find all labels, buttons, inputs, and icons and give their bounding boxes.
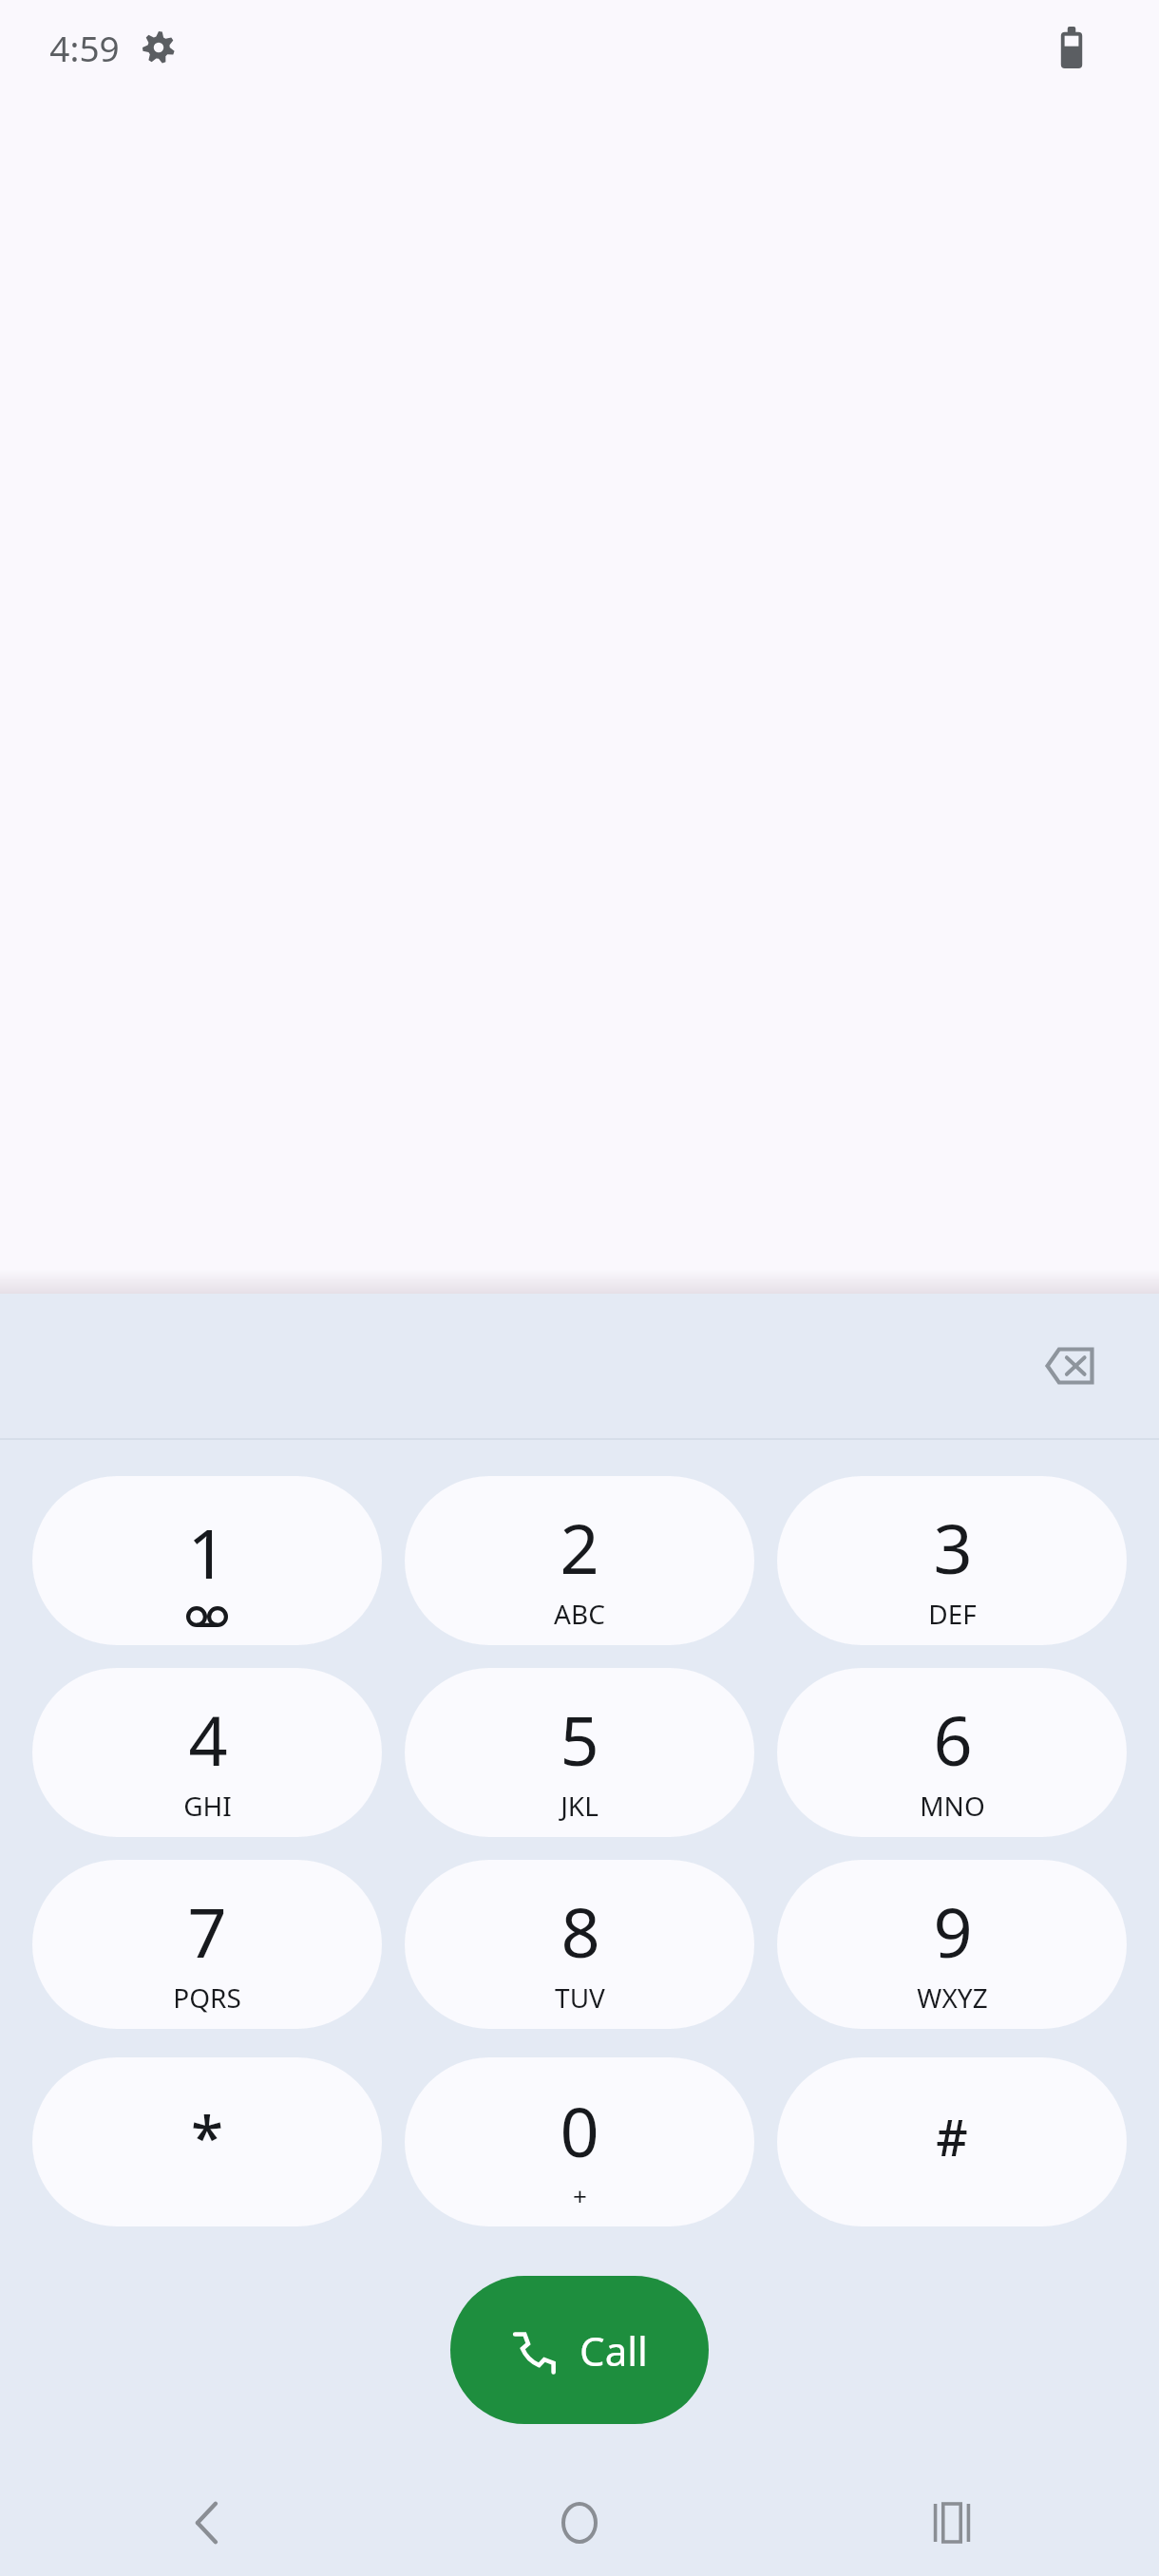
staticText: 3: [933, 1501, 973, 1594]
staticText: 4: [188, 1693, 228, 1786]
staticText: 0: [560, 2084, 599, 2177]
button[interactable]: Home: [532, 2475, 627, 2570]
staticText: MNO: [920, 1788, 985, 1824]
staticText: DEF: [928, 1596, 977, 1632]
staticText: JKL: [560, 1788, 598, 1824]
staticText: *: [191, 2096, 223, 2176]
staticText: Call: [579, 2323, 648, 2377]
staticText: 9: [933, 1885, 973, 1978]
button[interactable]: 1: [32, 1476, 382, 1645]
staticText: 2: [560, 1501, 599, 1594]
button[interactable]: Call: [450, 2276, 709, 2424]
button[interactable]: 3: [777, 1476, 1127, 1645]
button[interactable]: 0: [405, 2057, 754, 2226]
staticText: 5: [560, 1693, 599, 1786]
staticText: 8: [560, 1885, 600, 1978]
staticText: #: [936, 2103, 968, 2170]
staticText: 4:59: [49, 24, 120, 71]
button[interactable]: 6: [777, 1668, 1127, 1837]
button[interactable]: Back: [160, 2475, 255, 2570]
staticText: WXYZ: [917, 1979, 988, 2016]
staticText: TUV: [555, 1979, 605, 2016]
staticText: ABC: [554, 1596, 605, 1632]
staticText: 6: [933, 1693, 973, 1786]
staticText: PQRS: [173, 1979, 241, 2016]
staticText: GHI: [183, 1788, 232, 1824]
button[interactable]: 2: [405, 1476, 754, 1645]
button[interactable]: 5: [405, 1668, 754, 1837]
button[interactable]: #: [777, 2057, 1127, 2226]
staticText: 1: [187, 1506, 227, 1599]
staticText: +: [573, 2179, 587, 2212]
button[interactable]: 7: [32, 1860, 382, 2029]
button[interactable]: 4: [32, 1668, 382, 1837]
button[interactable]: 9: [777, 1860, 1127, 2029]
staticText: 7: [187, 1885, 227, 1978]
button[interactable]: *: [32, 2057, 382, 2226]
button[interactable]: Backspace: [1026, 1322, 1113, 1410]
button[interactable]: Recent apps: [904, 2475, 999, 2570]
button[interactable]: 8: [405, 1860, 754, 2029]
